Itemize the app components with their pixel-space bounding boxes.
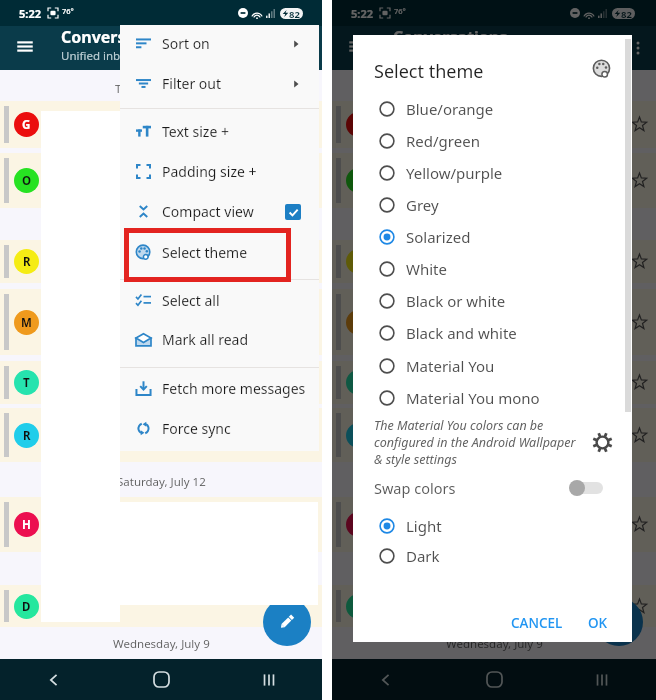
- staticText: Conversations: [393, 26, 508, 48]
- button[interactable]: Dark: [353, 540, 632, 572]
- staticText: Black or white: [406, 291, 506, 311]
- button[interactable]: Swap colors: [353, 472, 632, 504]
- staticText: 5:22: [19, 6, 41, 21]
- button[interactable]: Black and white: [353, 317, 632, 349]
- staticText: Select theme: [374, 59, 484, 84]
- button[interactable]: White: [353, 253, 632, 285]
- staticText: R: [23, 428, 31, 444]
- button[interactable]: G: [332, 101, 656, 148]
- button[interactable]: Yellow/purple: [353, 157, 632, 189]
- staticText: Black and white: [406, 323, 517, 343]
- staticText: Compact view: [162, 202, 285, 221]
- button[interactable]: Select theme: [120, 234, 319, 271]
- button[interactable]: Home: [108, 659, 215, 700]
- staticText: Filter out: [162, 74, 290, 93]
- staticText: Force sync: [162, 419, 319, 438]
- button[interactable]: Home: [440, 659, 548, 700]
- staticText: 82: [289, 8, 300, 19]
- staticText: Sunday, July 13: [121, 216, 202, 232]
- button[interactable]: Material You mono: [353, 382, 632, 414]
- button[interactable]: R: [0, 240, 322, 283]
- staticText: 76°: [62, 6, 74, 16]
- staticText: H: [22, 517, 31, 533]
- button[interactable]: D: [332, 585, 656, 627]
- button[interactable]: Back: [332, 659, 440, 700]
- button[interactable]: R: [332, 408, 656, 462]
- staticText: OK: [588, 614, 608, 632]
- button[interactable]: Open navigation drawer: [10, 33, 40, 63]
- button[interactable]: Open Android Wallpaper and style setting…: [592, 432, 613, 453]
- staticText: Blue/orange: [406, 99, 494, 119]
- button[interactable]: OK: [580, 607, 616, 639]
- button[interactable]: O: [332, 153, 656, 208]
- staticText: Material You: [406, 356, 495, 376]
- button[interactable]: O: [0, 153, 322, 208]
- button[interactable]: M: [332, 289, 656, 355]
- staticText: CANCEL: [511, 614, 563, 632]
- staticText: T: [23, 375, 30, 391]
- button[interactable]: D: [0, 585, 322, 627]
- staticText: Text size +: [162, 122, 319, 141]
- button[interactable]: M: [0, 289, 322, 355]
- button[interactable]: Recent apps: [548, 659, 656, 700]
- button[interactable]: Solarized: [353, 221, 632, 253]
- staticText: Select all: [162, 291, 319, 310]
- staticText: Unified inbox: [61, 48, 133, 64]
- button[interactable]: Back: [0, 659, 108, 700]
- staticText: The Material You colors can be configure…: [374, 417, 584, 468]
- staticText: Saturday, July 12: [117, 474, 206, 490]
- staticText: Sort on: [162, 34, 290, 53]
- button[interactable]: Fetch more messages: [120, 370, 319, 407]
- button[interactable]: Compact view: [120, 193, 319, 230]
- button[interactable]: CANCEL: [503, 607, 571, 639]
- button[interactable]: T: [0, 361, 322, 404]
- button[interactable]: Compose new message: [263, 598, 311, 646]
- staticText: Yellow/purple: [406, 163, 503, 183]
- button[interactable]: Red/green: [353, 125, 632, 157]
- staticText: White: [406, 259, 447, 279]
- staticText: Material You mono: [406, 388, 540, 408]
- staticText: G: [22, 117, 31, 133]
- staticText: Select theme: [162, 243, 319, 262]
- button[interactable]: Text size +: [120, 113, 319, 150]
- button[interactable]: T: [332, 361, 656, 404]
- button[interactable]: Filter out: [120, 65, 319, 102]
- staticText: D: [22, 599, 31, 615]
- button[interactable]: G: [0, 101, 322, 148]
- button[interactable]: Blue/orange: [353, 93, 632, 125]
- staticText: Light: [406, 516, 442, 536]
- staticText: 5:22: [351, 6, 373, 21]
- staticText: Wednesday, July 9: [446, 636, 543, 652]
- button[interactable]: Theme color palette: [593, 60, 611, 78]
- staticText: Conversations: [61, 26, 176, 48]
- button[interactable]: H: [332, 497, 656, 552]
- button[interactable]: Grey: [353, 189, 632, 221]
- staticText: 82: [621, 8, 632, 19]
- button[interactable]: Black or white: [353, 285, 632, 317]
- button[interactable]: Sort on: [120, 25, 319, 62]
- staticText: Fetch more messages: [162, 379, 319, 398]
- staticText: Swap colors: [374, 478, 456, 498]
- button[interactable]: Force sync: [120, 410, 319, 447]
- button[interactable]: Light: [353, 510, 632, 542]
- button[interactable]: Mark all read: [120, 321, 319, 358]
- button[interactable]: Material You: [353, 350, 632, 382]
- staticText: Dark: [406, 546, 440, 566]
- button[interactable]: Select all: [120, 282, 319, 319]
- button[interactable]: H: [0, 497, 322, 552]
- staticText: Wednesday, July 9: [113, 636, 210, 652]
- staticText: Red/green: [406, 131, 480, 151]
- staticText: Solarized: [406, 227, 471, 247]
- button[interactable]: Padding size +: [120, 153, 319, 190]
- button[interactable]: R: [0, 408, 322, 462]
- button[interactable]: Recent apps: [215, 659, 322, 700]
- button[interactable]: R: [332, 240, 656, 283]
